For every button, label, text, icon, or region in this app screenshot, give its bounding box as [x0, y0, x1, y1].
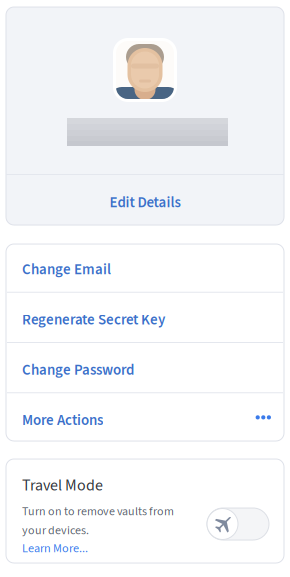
staticText: Change Email [22, 259, 111, 280]
button[interactable]: Edit Details [6, 175, 284, 225]
button[interactable]: Change Password [6, 343, 284, 392]
staticText: Travel Mode [22, 474, 103, 497]
staticText: Regenerate Secret Key [22, 309, 165, 330]
staticText: Learn More... [22, 540, 88, 557]
button[interactable]: More Actions [6, 393, 284, 442]
staticText: More Actions [22, 410, 103, 431]
staticText: Turn on to remove vaults from [22, 503, 174, 520]
staticText: Edit Details [109, 192, 180, 213]
staticText: Change Password [22, 359, 134, 381]
button[interactable]: Learn More... [22, 543, 88, 554]
button[interactable]: Regenerate Secret Key [6, 293, 284, 342]
staticText: your devices. [22, 522, 89, 539]
button[interactable]: Change Email [6, 242, 284, 292]
button[interactable]: Travel Mode [207, 508, 269, 540]
